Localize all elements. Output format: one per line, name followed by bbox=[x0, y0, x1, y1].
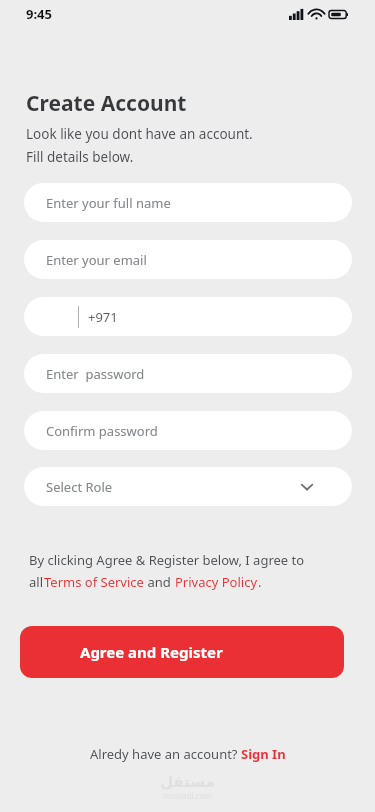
staticText: 9:45 bbox=[26, 5, 52, 23]
button[interactable]: Privacy Policy bbox=[175, 573, 258, 591]
staticText: Look like you dont have an account. bbox=[26, 125, 253, 143]
staticText: By clicking Agree & Register below, I ag… bbox=[29, 551, 305, 569]
button[interactable]: Select Role bbox=[24, 467, 352, 506]
staticText: all bbox=[29, 573, 44, 591]
staticText: Sign In bbox=[241, 745, 286, 763]
staticText: Terms of Service bbox=[44, 573, 144, 591]
button[interactable]: Sign In bbox=[241, 745, 286, 763]
button[interactable]: Enter your email bbox=[24, 240, 352, 279]
button[interactable]: Agree and Register bbox=[20, 626, 344, 678]
staticText: مستقل bbox=[160, 773, 215, 790]
staticText: Enter password bbox=[46, 365, 145, 383]
other: Select role dropdown bbox=[300, 480, 314, 494]
button[interactable]: Terms of Service bbox=[44, 573, 144, 591]
staticText: Privacy Policy bbox=[175, 573, 258, 591]
staticText: Fill details below. bbox=[26, 148, 134, 166]
staticText: Confirm password bbox=[46, 422, 158, 440]
button[interactable]: +971 bbox=[24, 297, 352, 336]
staticText: Select Role bbox=[46, 478, 113, 496]
staticText: Enter your full name bbox=[46, 194, 171, 212]
button[interactable]: Enter your full name bbox=[24, 183, 352, 222]
staticText: . bbox=[258, 573, 262, 591]
staticText: +971 bbox=[88, 308, 118, 326]
staticText: Create Account bbox=[26, 89, 187, 118]
staticText: Alredy have an account? bbox=[90, 745, 241, 763]
staticText: Enter your email bbox=[46, 251, 147, 269]
button[interactable]: Confirm password bbox=[24, 411, 352, 450]
staticText: and bbox=[144, 573, 175, 591]
staticText: mostaql.com bbox=[163, 790, 212, 801]
staticText: Agree and Register bbox=[80, 642, 223, 662]
button[interactable]: Enter password bbox=[24, 354, 352, 393]
